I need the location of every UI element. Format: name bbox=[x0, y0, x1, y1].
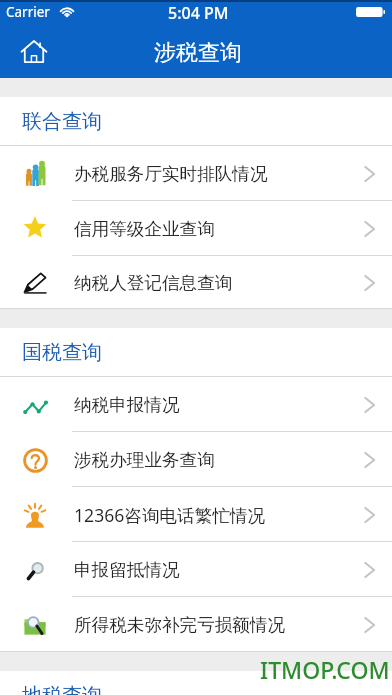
staticText: 办税服务厅实时排队情况 bbox=[74, 163, 268, 185]
staticText: 国税查询 bbox=[22, 340, 102, 365]
staticText: Carrier bbox=[6, 3, 50, 21]
staticText: 12366咨询电话繁忙情况 bbox=[74, 503, 266, 527]
staticText: 涉税查询 bbox=[154, 39, 242, 67]
button[interactable]: 12366咨询电话繁忙情况 bbox=[0, 487, 392, 542]
button[interactable]: 涉税办理业务查询 bbox=[0, 432, 392, 487]
staticText: 地税查询 bbox=[22, 683, 102, 696]
button[interactable]: 申报留抵情况 bbox=[0, 542, 392, 597]
staticText: 涉税办理业务查询 bbox=[74, 449, 215, 471]
staticText: 5:04 PM bbox=[168, 2, 229, 22]
button[interactable]: 纳税人登记信息查询 bbox=[0, 256, 392, 309]
button[interactable]: Home bbox=[14, 32, 54, 72]
staticText: 所得税未弥补完亏损额情况 bbox=[74, 614, 286, 636]
staticText: 联合查询 bbox=[22, 109, 102, 134]
button[interactable]: 办税服务厅实时排队情况 bbox=[0, 146, 392, 201]
staticText: 纳税申报情况 bbox=[74, 394, 180, 416]
staticText: 申报留抵情况 bbox=[74, 559, 180, 581]
staticText: 信用等级企业查询 bbox=[74, 218, 215, 240]
button[interactable]: 信用等级企业查询 bbox=[0, 201, 392, 256]
staticText: 纳税人登记信息查询 bbox=[74, 272, 233, 294]
button[interactable]: 纳税申报情况 bbox=[0, 377, 392, 432]
staticText: ITMOP.COM bbox=[260, 654, 390, 685]
button[interactable]: 所得税未弥补完亏损额情况 bbox=[0, 597, 392, 652]
